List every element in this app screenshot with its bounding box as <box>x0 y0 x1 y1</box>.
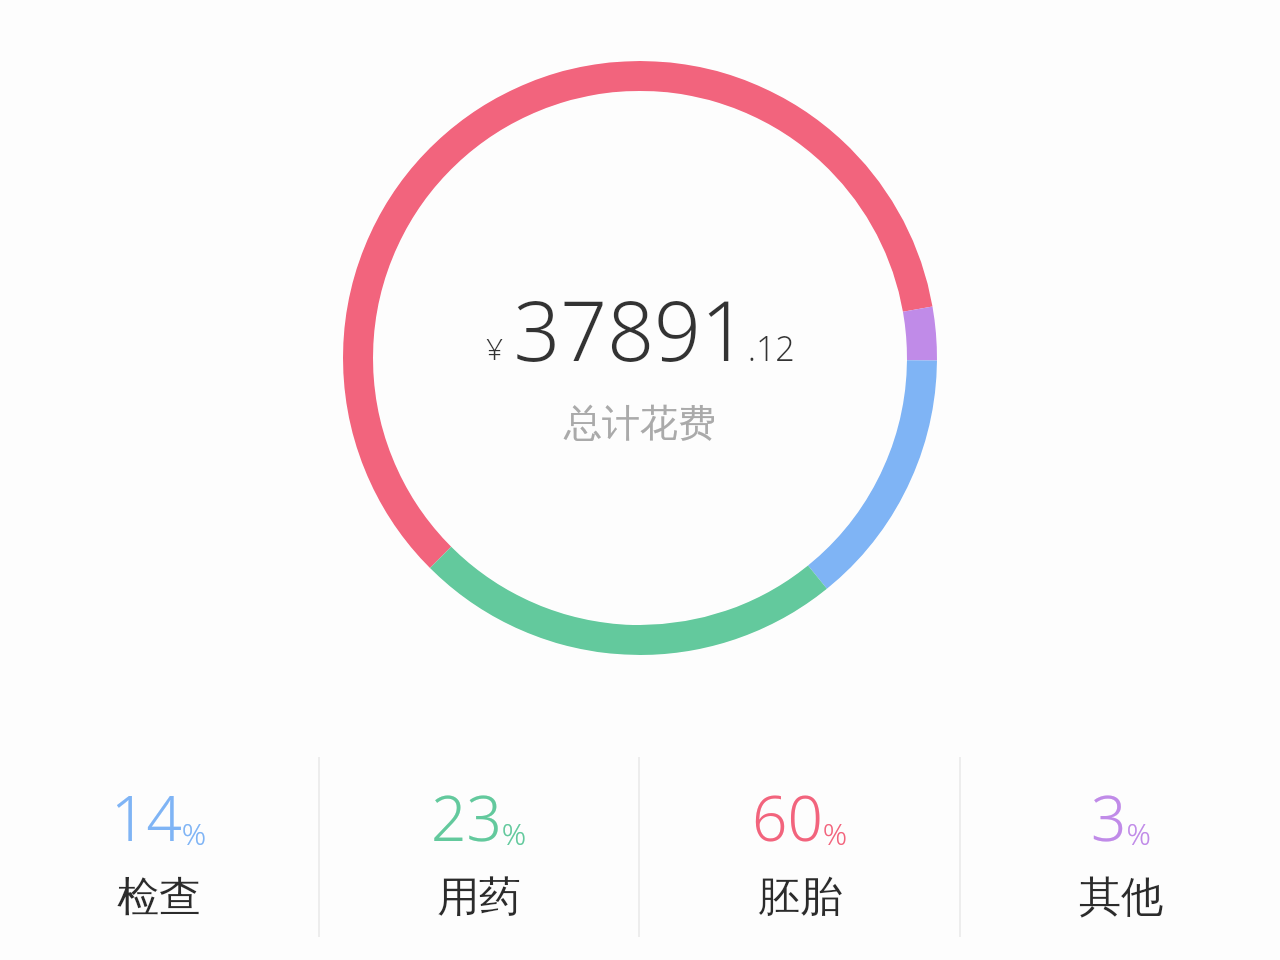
staticText: 其他 <box>1079 871 1163 924</box>
staticText: 检查 <box>117 871 201 924</box>
button[interactable]: 3% <box>961 757 1280 937</box>
button[interactable]: Total spending donut chart <box>343 61 937 655</box>
staticText: ¥ 37891.12 <box>486 273 795 385</box>
staticText: 23% <box>431 775 527 859</box>
staticText: 3% <box>1091 775 1151 859</box>
staticText: 用药 <box>437 871 521 924</box>
staticText: 总计花费 <box>564 399 716 447</box>
button[interactable]: 60% <box>640 757 959 937</box>
staticText: 胚胎 <box>758 871 842 924</box>
button[interactable]: 23% <box>320 757 638 937</box>
button[interactable]: 14% <box>0 757 318 937</box>
staticText: 14% <box>111 775 207 859</box>
staticText: 60% <box>752 775 848 859</box>
